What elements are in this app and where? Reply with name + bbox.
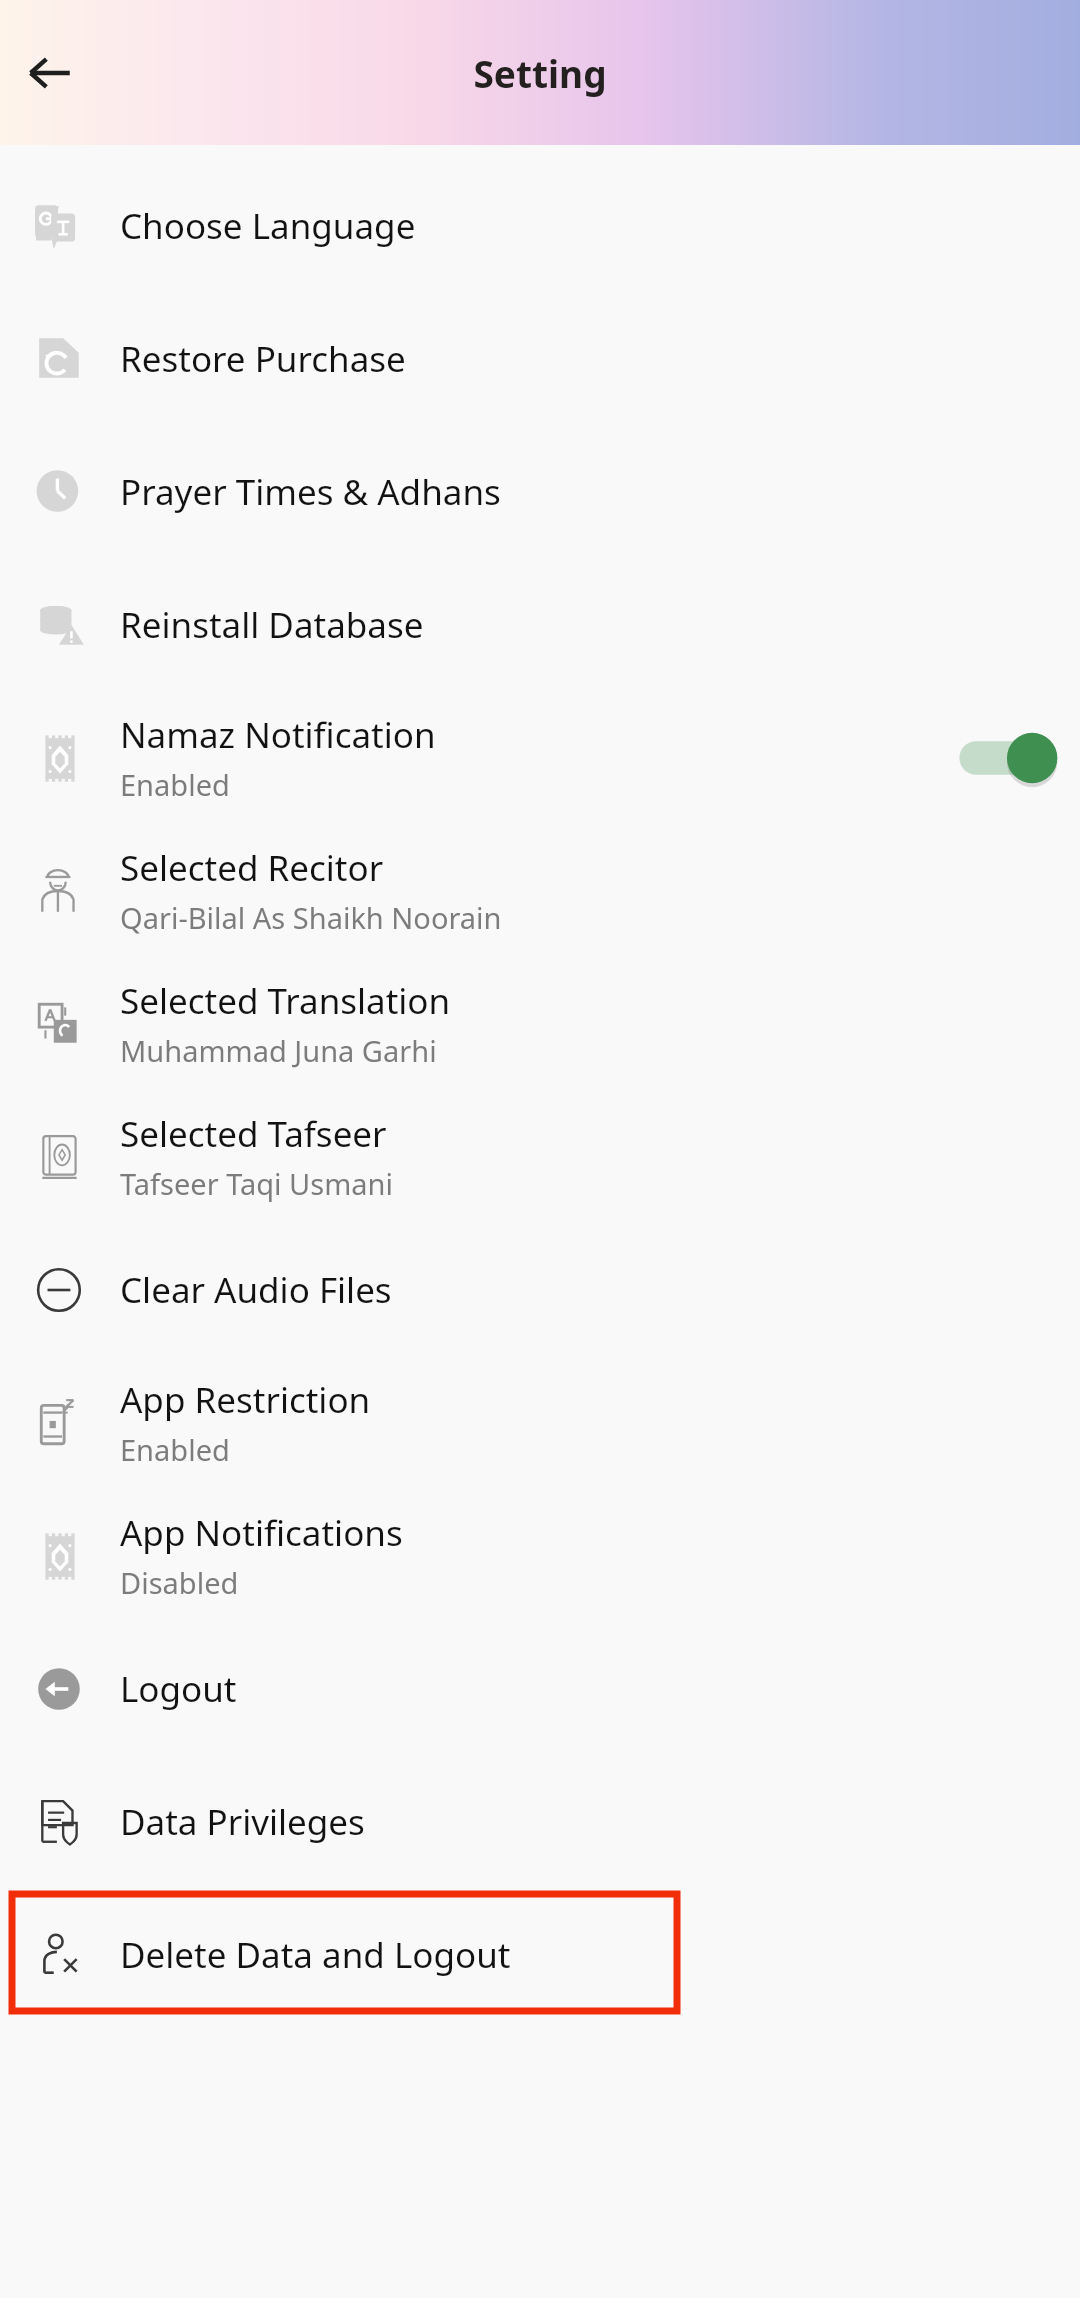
- staticText: Delete Data and Logout: [120, 1931, 511, 1979]
- button[interactable]: Choose Language: [0, 159, 1080, 292]
- button[interactable]: Namaz Notification toggle: [930, 708, 1080, 808]
- staticText: Muhammad Juna Garhi: [120, 1031, 437, 1070]
- staticText: Namaz Notification: [120, 711, 436, 759]
- staticText: Tafseer Taqi Usmani: [120, 1164, 393, 1203]
- staticText: Choose Language: [120, 202, 416, 250]
- button[interactable]: App Restriction: [0, 1356, 1080, 1489]
- button[interactable]: Selected Translation: [0, 957, 1080, 1090]
- button[interactable]: Back: [14, 37, 86, 109]
- staticText: Selected Translation: [120, 977, 451, 1025]
- button[interactable]: Delete Data and Logout: [0, 1888, 1080, 2021]
- button[interactable]: App Notifications: [0, 1489, 1080, 1622]
- staticText: App Notifications: [120, 1509, 403, 1557]
- staticText: Restore Purchase: [120, 335, 406, 383]
- button[interactable]: Namaz Notification: [0, 691, 1080, 824]
- staticText: Selected Tafseer: [120, 1110, 387, 1158]
- staticText: Logout: [120, 1665, 237, 1713]
- button[interactable]: Clear Audio Files: [0, 1223, 1080, 1356]
- staticText: Clear Audio Files: [120, 1266, 392, 1314]
- button[interactable]: Selected Tafseer: [0, 1090, 1080, 1223]
- staticText: Qari-Bilal As Shaikh Noorain: [120, 898, 502, 937]
- button[interactable]: Restore Purchase: [0, 292, 1080, 425]
- button[interactable]: Reinstall Database: [0, 558, 1080, 691]
- button[interactable]: Prayer Times & Adhans: [0, 425, 1080, 558]
- staticText: Data Privileges: [120, 1798, 365, 1846]
- staticText: App Restriction: [120, 1376, 371, 1424]
- staticText: Enabled: [120, 765, 230, 804]
- staticText: Reinstall Database: [120, 601, 424, 649]
- staticText: Prayer Times & Adhans: [120, 468, 501, 516]
- staticText: Selected Recitor: [120, 844, 384, 892]
- button[interactable]: Data Privileges: [0, 1755, 1080, 1888]
- staticText: Enabled: [120, 1430, 230, 1469]
- button[interactable]: Logout: [0, 1622, 1080, 1755]
- button[interactable]: Selected Recitor: [0, 824, 1080, 957]
- staticText: Disabled: [120, 1563, 239, 1602]
- staticText: Setting: [473, 48, 607, 98]
